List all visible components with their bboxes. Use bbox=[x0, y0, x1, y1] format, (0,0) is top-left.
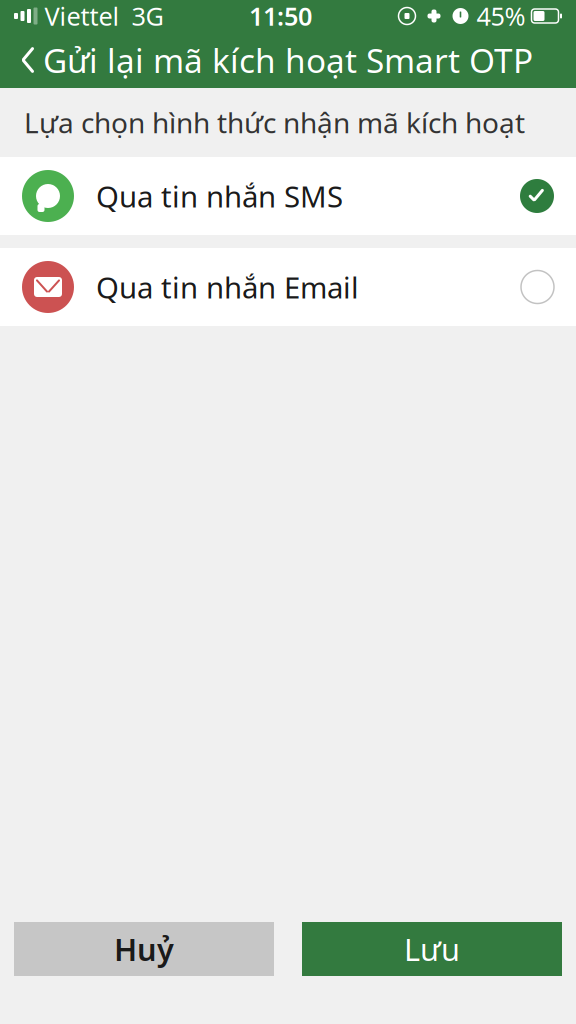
staticText: Gửi lại mã kích hoạt Smart OTP bbox=[43, 38, 533, 82]
staticText: Qua tin nhắn SMS bbox=[96, 176, 343, 215]
button[interactable]: Qua tin nhắn Email bbox=[0, 248, 576, 326]
button[interactable]: Huỷ bbox=[14, 922, 274, 976]
staticText: 3G bbox=[131, 0, 163, 33]
staticText: 45% bbox=[476, 0, 525, 33]
staticText: Lưu bbox=[404, 929, 460, 969]
button[interactable]: Lưu bbox=[302, 922, 562, 976]
button[interactable]: Back bbox=[0, 32, 56, 88]
button[interactable]: Qua tin nhắn SMS bbox=[0, 157, 576, 235]
staticText: Qua tin nhắn Email bbox=[96, 267, 359, 306]
staticText: 11:50 bbox=[249, 0, 312, 33]
staticText: Huỷ bbox=[114, 929, 174, 969]
staticText: Viettel bbox=[44, 0, 119, 33]
staticText: Lựa chọn hình thức nhận mã kích hoạt bbox=[24, 104, 525, 141]
